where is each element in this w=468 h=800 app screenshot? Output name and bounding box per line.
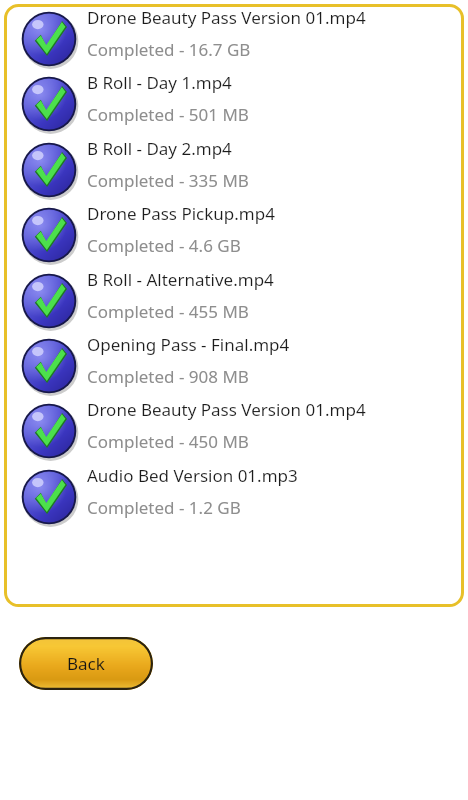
staticText: B Roll - Alternative.mp4: [87, 268, 274, 291]
staticText: Drone Beauty Pass Version 01.mp4: [87, 398, 366, 421]
staticText: B Roll - Day 1.mp4: [87, 71, 232, 94]
button[interactable]: B Roll - Day 1.mp4: [4, 69, 464, 135]
button[interactable]: B Roll - Alternative.mp4: [4, 266, 464, 332]
button[interactable]: B Roll - Day 2.mp4: [4, 135, 464, 201]
button[interactable]: Opening Pass - Final.mp4: [4, 331, 464, 397]
staticText: Audio Bed Version 01.mp3: [87, 464, 298, 487]
staticText: Completed - 908 MB: [87, 365, 249, 388]
button[interactable]: Audio Bed Version 01.mp3: [4, 462, 464, 528]
button[interactable]: Drone Beauty Pass Version 01.mp4: [4, 396, 464, 462]
staticText: Completed - 455 MB: [87, 300, 249, 323]
staticText: Completed - 335 MB: [87, 169, 249, 192]
staticText: Opening Pass - Final.mp4: [87, 333, 290, 356]
button[interactable]: Back: [19, 637, 153, 690]
staticText: Back: [67, 652, 105, 675]
staticText: Completed - 450 MB: [87, 430, 249, 453]
button[interactable]: Drone Beauty Pass Version 01.mp4: [4, 4, 464, 70]
staticText: Completed - 4.6 GB: [87, 234, 241, 257]
staticText: Completed - 1.2 GB: [87, 496, 241, 519]
staticText: Drone Pass Pickup.mp4: [87, 202, 275, 225]
staticText: Completed - 16.7 GB: [87, 38, 251, 61]
staticText: Completed - 501 MB: [87, 103, 249, 126]
staticText: B Roll - Day 2.mp4: [87, 137, 232, 160]
staticText: Drone Beauty Pass Version 01.mp4: [87, 6, 366, 29]
button[interactable]: Drone Pass Pickup.mp4: [4, 200, 464, 266]
